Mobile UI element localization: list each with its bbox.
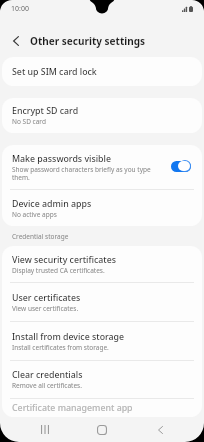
staticText: Credential storage (12, 232, 69, 241)
staticText: Display trusted CA certificates. (12, 266, 105, 275)
button[interactable]: Certificate management app (2, 399, 202, 417)
staticText: No SD card (12, 117, 46, 126)
staticText: Remove all certificates. (12, 381, 82, 390)
staticText: User certificates (12, 292, 81, 304)
staticText: Show password characters briefly as you … (12, 165, 166, 182)
button[interactable]: Make passwords visible (2, 145, 202, 189)
button[interactable]: Install from device storage (2, 322, 202, 360)
button[interactable]: Back (140, 417, 180, 442)
staticText: Install certificates from storage. (12, 343, 109, 352)
button[interactable]: Encrypt SD card (2, 98, 202, 133)
button[interactable]: View security certificates (2, 246, 202, 282)
staticText: Clear credentials (12, 369, 83, 381)
staticText: Install from device storage (12, 331, 125, 343)
staticText: Other security settings (30, 34, 146, 48)
button[interactable]: User certificates (2, 283, 202, 321)
button[interactable]: Set up SIM card lock (2, 57, 202, 86)
staticText: Certificate management app (12, 402, 133, 414)
button[interactable]: Device admin apps (2, 190, 202, 226)
staticText: View security certificates (12, 254, 116, 266)
staticText: No active apps (12, 210, 57, 219)
button[interactable]: Navigate up (0, 28, 29, 53)
button[interactable]: Recent apps (25, 417, 65, 442)
staticText: Set up SIM card lock (12, 66, 97, 78)
staticText: 10:00 (11, 4, 29, 14)
staticText: Device admin apps (12, 198, 92, 210)
button[interactable]: Home (82, 417, 122, 442)
button[interactable]: Clear credentials (2, 361, 202, 398)
staticText: View user certificates. (12, 304, 79, 313)
staticText: Encrypt SD card (12, 105, 79, 117)
staticText: Make passwords visible (12, 153, 111, 165)
